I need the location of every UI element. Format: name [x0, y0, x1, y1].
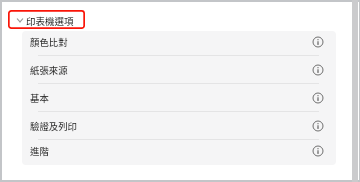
staticText: 顏色比對 [30, 35, 68, 49]
staticText: 基本 [30, 91, 49, 105]
staticText: 印表機選項 [26, 14, 74, 28]
button[interactable]: Info [307, 31, 329, 53]
staticText: 進階 [30, 144, 49, 158]
button[interactable]: Info [307, 115, 329, 137]
button[interactable]: Info [307, 140, 329, 162]
staticText: 紙張來源 [30, 63, 68, 77]
button[interactable]: 驗證及列印 [22, 112, 336, 140]
button[interactable]: Info [307, 87, 329, 109]
button[interactable]: 印表機選項 [8, 10, 85, 29]
staticText: 驗證及列印 [30, 119, 77, 133]
button[interactable]: Info [307, 59, 329, 81]
button[interactable]: 進階 [22, 140, 336, 162]
button[interactable]: 顏色比對 [22, 31, 336, 56]
button[interactable]: 紙張來源 [22, 56, 336, 84]
button[interactable]: 基本 [22, 84, 336, 112]
